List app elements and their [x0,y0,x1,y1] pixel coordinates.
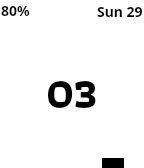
staticText: 03 [46,59,98,128]
staticText: Sun 29 [97,2,143,21]
staticText: 80% [1,1,30,20]
